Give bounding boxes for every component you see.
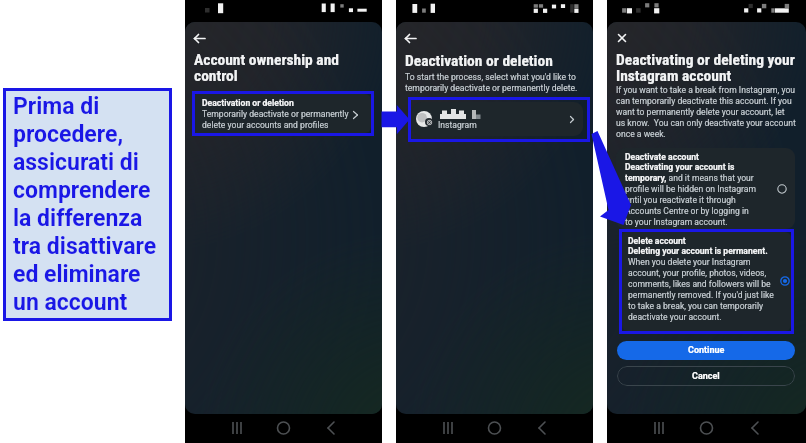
button[interactable]: Delete account <box>622 232 791 331</box>
button[interactable]: Back <box>190 29 208 47</box>
staticText: Cancel <box>692 371 720 382</box>
staticText: Deactivating or deleting your Instagram … <box>616 51 795 85</box>
staticText: Delete account <box>628 236 686 246</box>
button[interactable]: Deactivate account <box>616 148 795 229</box>
staticText: Continue <box>688 345 725 356</box>
staticText: Account ownership and control <box>194 51 339 85</box>
staticText: Deactivation or deletion <box>202 98 294 108</box>
staticText: Deactivate account <box>625 152 699 162</box>
staticText: Instagram <box>438 120 477 130</box>
staticText: Temporarily deactivate or permanently de… <box>202 109 349 130</box>
button[interactable]: Continue <box>617 341 795 360</box>
staticText: If you want to take a break from Instagr… <box>616 85 796 139</box>
button[interactable]: Cancel <box>617 366 795 386</box>
staticText: Deactivation or deletion <box>405 52 553 70</box>
button[interactable]: Close <box>615 31 629 45</box>
staticText: Prima di procedere, assicurati di compre… <box>13 93 157 316</box>
staticText: Deleting your account is permanent. When… <box>628 246 774 322</box>
button[interactable]: Deactivation or deletion <box>195 94 371 133</box>
staticText: To start the process, select what you'd … <box>405 72 578 93</box>
button[interactable]: Back <box>401 29 419 47</box>
staticText: Deactivating your account is temporary, … <box>625 162 758 227</box>
button[interactable]: Instagram <box>412 102 583 136</box>
